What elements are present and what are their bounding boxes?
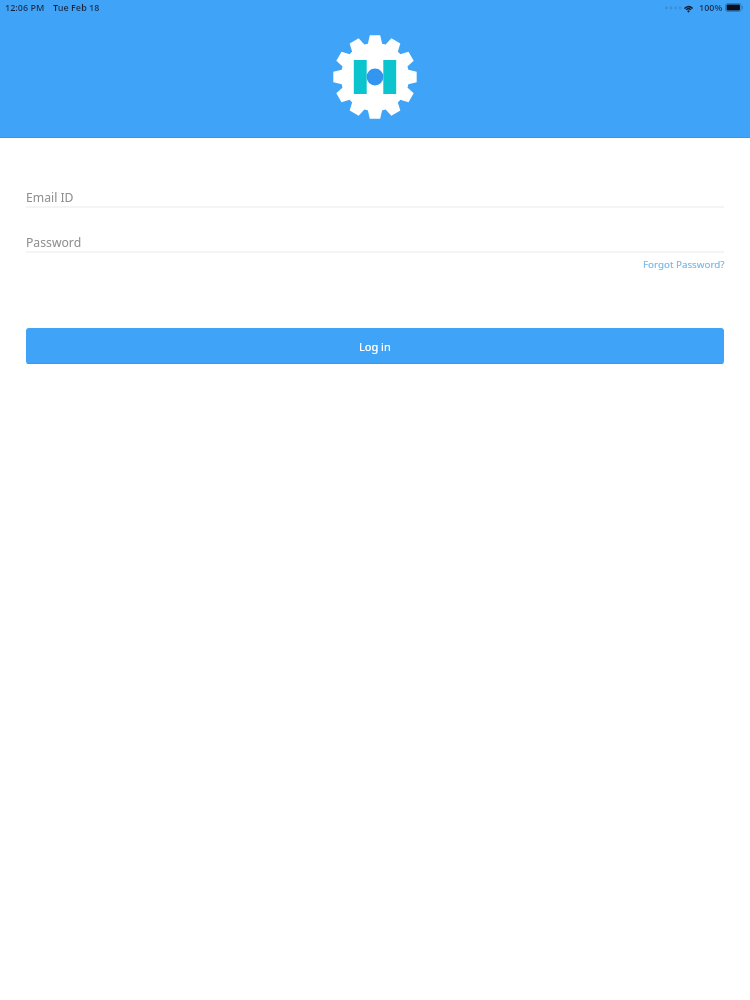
button[interactable]: Email ID: [0, 188, 750, 208]
staticText: Password: [26, 234, 82, 251]
button[interactable]: Forgot Password?: [642, 256, 726, 273]
staticText: Tue Feb 18: [53, 1, 100, 13]
staticText: 100%: [699, 1, 723, 13]
other: Wi-Fi: [683, 2, 694, 13]
button[interactable]: Password: [0, 233, 750, 253]
staticText: 12:06 PM: [5, 1, 45, 13]
other: Battery full: [725, 3, 744, 12]
staticText: Email ID: [26, 189, 74, 206]
other: Cellular signal: [665, 2, 680, 12]
staticText: Forgot Password?: [643, 258, 725, 271]
button[interactable]: Log in: [26, 328, 724, 364]
staticText: Log in: [359, 339, 391, 354]
other: App logo: [332, 34, 418, 120]
